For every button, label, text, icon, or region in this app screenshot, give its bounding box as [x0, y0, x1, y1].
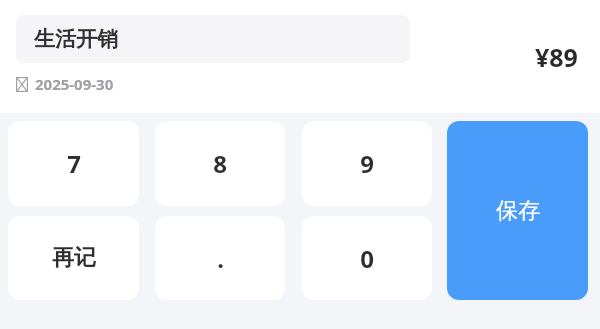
button[interactable]: 7	[8, 121, 139, 206]
button[interactable]: 2025-09-30	[16, 74, 114, 94]
button[interactable]: 再记	[8, 216, 139, 300]
staticText: 8	[213, 147, 227, 180]
button[interactable]: 8	[155, 121, 285, 206]
button[interactable]: 9	[302, 121, 432, 206]
button[interactable]: 生活开销	[16, 15, 410, 63]
button[interactable]: 0	[302, 216, 432, 300]
staticText: 生活开销	[34, 26, 118, 52]
staticText: 0	[360, 242, 374, 275]
staticText: .	[217, 242, 224, 275]
staticText: ¥89	[535, 40, 578, 74]
button[interactable]: 保存	[447, 121, 588, 300]
staticText: 保存	[496, 197, 540, 225]
staticText: 2025-09-30	[35, 74, 114, 94]
staticText: 7	[67, 147, 81, 180]
button[interactable]: .	[155, 216, 285, 300]
staticText: 9	[360, 147, 374, 180]
staticText: 再记	[52, 244, 96, 272]
